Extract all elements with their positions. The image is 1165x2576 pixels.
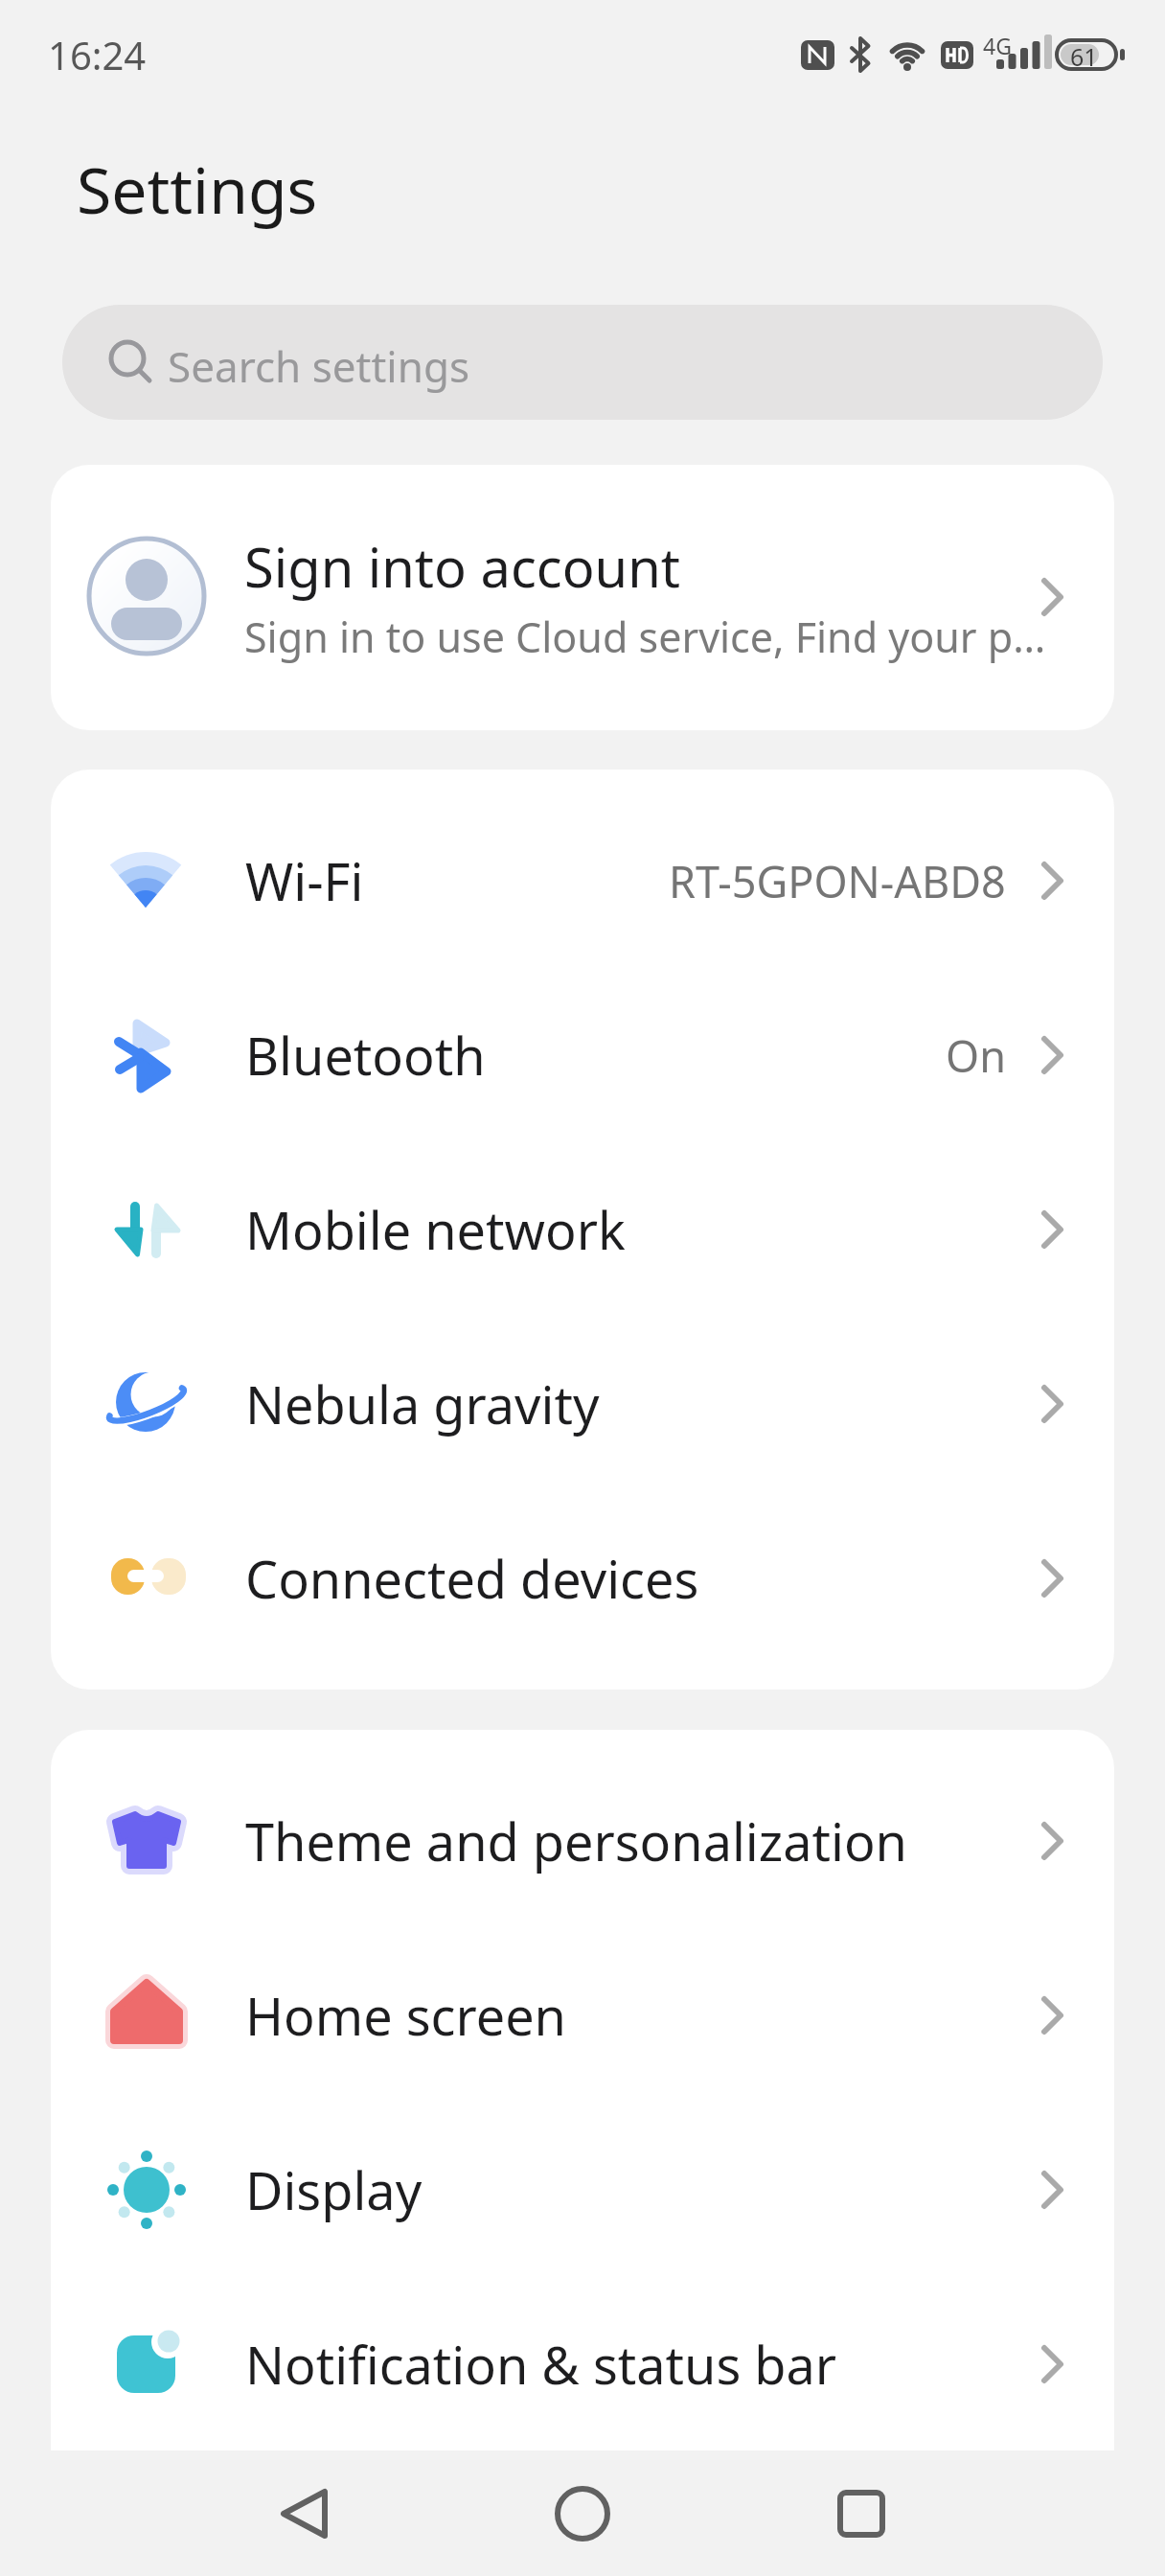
staticText: Nebula gravity bbox=[245, 1368, 600, 1439]
staticText: 16:24 bbox=[48, 29, 147, 80]
staticText: On bbox=[946, 1026, 1006, 1085]
button[interactable]: Connected devices bbox=[51, 1491, 1114, 1666]
staticText: 61 bbox=[1070, 40, 1098, 73]
button[interactable]: Theme and personalization bbox=[51, 1754, 1114, 1928]
staticText: Sign into account bbox=[244, 530, 680, 603]
staticText: Sign in to use Cloud service, Find your … bbox=[244, 609, 1046, 665]
staticText: Wi-Fi bbox=[245, 845, 364, 916]
staticText: Notification & status bar bbox=[245, 2329, 837, 2400]
button[interactable]: Display bbox=[51, 2103, 1114, 2277]
staticText: RT-5GPON-ABD8 bbox=[669, 852, 1006, 910]
staticText: Mobile network bbox=[245, 1194, 626, 1265]
staticText: Home screen bbox=[245, 1980, 566, 2051]
staticText: Search settings bbox=[168, 337, 470, 395]
button[interactable]: Mobile network bbox=[51, 1142, 1114, 1317]
button[interactable]: Sign into account bbox=[51, 465, 1114, 730]
button[interactable]: Wi-Fi bbox=[51, 793, 1114, 968]
staticText: Display bbox=[245, 2154, 423, 2225]
button[interactable]: Home screen bbox=[51, 1928, 1114, 2103]
button[interactable]: Notification & status bar bbox=[51, 2277, 1114, 2450]
staticText: Theme and personalization bbox=[245, 1805, 907, 1876]
button[interactable] bbox=[786, 2472, 948, 2559]
staticText: 4G bbox=[983, 31, 1012, 60]
button[interactable]: Nebula gravity bbox=[51, 1317, 1114, 1491]
button[interactable] bbox=[220, 2472, 383, 2559]
button[interactable]: Search settings bbox=[62, 305, 1103, 420]
button[interactable]: Bluetooth bbox=[51, 968, 1114, 1142]
staticText: Settings bbox=[77, 146, 318, 232]
button[interactable] bbox=[503, 2472, 666, 2559]
staticText: Bluetooth bbox=[245, 1020, 486, 1091]
staticText: Connected devices bbox=[245, 1543, 699, 1614]
